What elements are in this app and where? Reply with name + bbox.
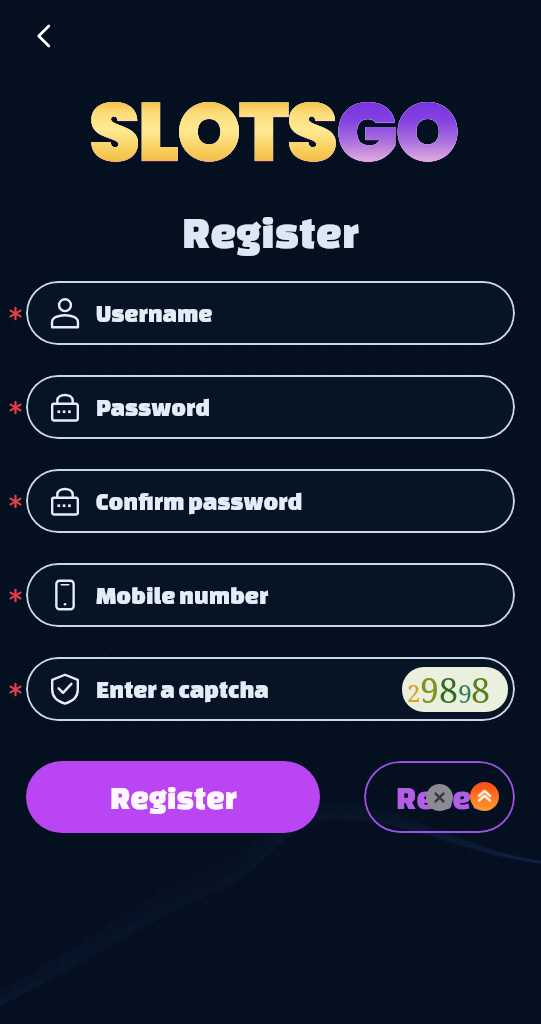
button[interactable]: Reset [364,761,515,833]
button[interactable]: Enter a captcha [26,657,515,721]
staticText: Enter a captcha [96,676,269,703]
staticText: Register [0,207,541,256]
button[interactable]: Mobile number [26,563,515,627]
staticText: Password [96,394,211,421]
button[interactable]: Back [22,14,66,58]
staticText: Confirm password [96,488,303,515]
button[interactable]: Close [426,784,453,811]
button[interactable]: Refresh captcha [402,667,508,712]
button[interactable]: Scroll to top [470,782,499,811]
button[interactable]: Password [26,375,515,439]
staticText: Register [110,780,237,815]
staticText: Username [96,300,213,327]
button[interactable]: Register [26,761,320,833]
staticText: Mobile number [96,582,269,609]
button[interactable]: Confirm password [26,469,515,533]
staticText: Reset [396,780,483,815]
button[interactable]: Username [26,281,515,345]
